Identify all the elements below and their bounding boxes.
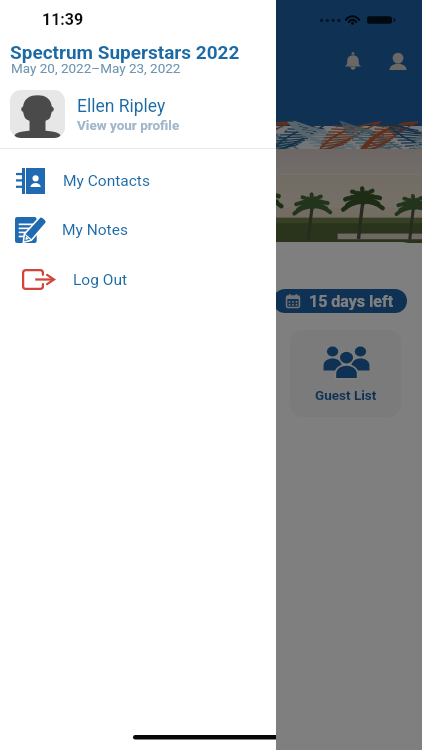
staticText: 11:39 xyxy=(42,10,84,29)
staticText: Spectrum Superstars 2022 xyxy=(10,41,240,63)
staticText: Log Out xyxy=(73,271,128,289)
staticText: 15 days left xyxy=(309,292,394,311)
button[interactable]: Ellen Ripley xyxy=(0,86,276,142)
staticText: View your profile xyxy=(77,117,180,133)
button[interactable]: My Contacts xyxy=(0,156,276,205)
button[interactable]: 15 days left xyxy=(273,289,407,313)
button[interactable]: Notifications xyxy=(332,40,374,82)
button[interactable]: My Notes xyxy=(0,205,276,254)
button[interactable]: Profile xyxy=(377,40,419,82)
staticText: Ellen Ripley xyxy=(77,96,166,117)
staticText: May 20, 2022–May 23, 2022 xyxy=(11,60,181,76)
button[interactable]: Guest List xyxy=(290,330,401,417)
staticText: My Contacts xyxy=(63,172,150,190)
staticText: My Notes xyxy=(62,221,128,239)
button[interactable]: Log Out xyxy=(0,255,276,304)
staticText: Guest List xyxy=(315,387,377,403)
